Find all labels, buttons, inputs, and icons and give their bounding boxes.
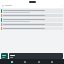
button[interactable]: More options (60, 4, 63, 7)
button[interactable] (1, 18, 63, 22)
button[interactable]: Search (23, 59, 27, 64)
button[interactable] (1, 53, 8, 59)
button[interactable]: Menu (1, 4, 4, 7)
button[interactable] (1, 9, 63, 13)
button[interactable] (1, 23, 63, 26)
button[interactable] (1, 14, 63, 17)
button[interactable] (1, 27, 63, 30)
button[interactable]: Home (10, 59, 14, 64)
button[interactable]: Library (37, 59, 41, 64)
button[interactable]: Profile (50, 59, 54, 64)
button[interactable] (9, 53, 63, 59)
